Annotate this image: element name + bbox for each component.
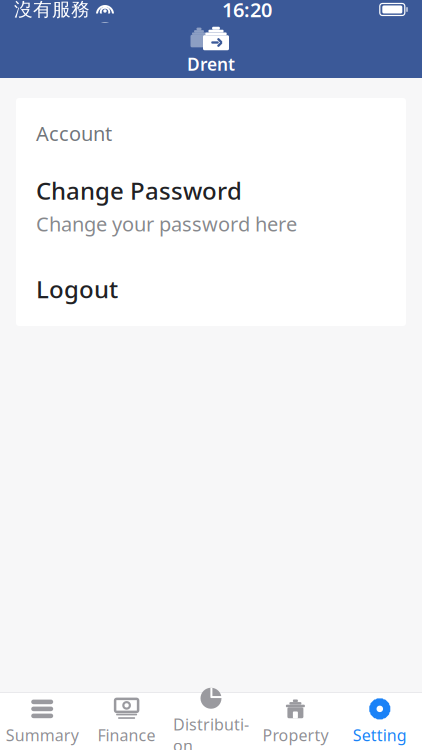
- button[interactable]: Distribution: [169, 680, 253, 750]
- staticText: Change your password here: [36, 210, 297, 237]
- staticText: Change Password: [36, 175, 242, 206]
- button[interactable]: Finance: [84, 690, 169, 750]
- staticText: 沒有服務: [14, 0, 90, 21]
- staticText: Drent: [187, 52, 235, 75]
- button[interactable]: Logout: [36, 245, 386, 315]
- staticText: Setting: [353, 724, 407, 746]
- staticText: Property: [262, 724, 328, 746]
- button[interactable]: Summary: [0, 690, 84, 750]
- button[interactable]: Setting: [338, 690, 422, 750]
- button[interactable]: Property: [253, 690, 338, 750]
- button[interactable]: Change Password: [36, 147, 386, 245]
- staticText: Distribution: [173, 714, 249, 750]
- staticText: Account: [36, 120, 112, 147]
- staticText: 16:20: [222, 0, 272, 23]
- staticText: Logout: [36, 273, 118, 305]
- staticText: Summary: [6, 724, 79, 746]
- staticText: Finance: [98, 724, 156, 746]
